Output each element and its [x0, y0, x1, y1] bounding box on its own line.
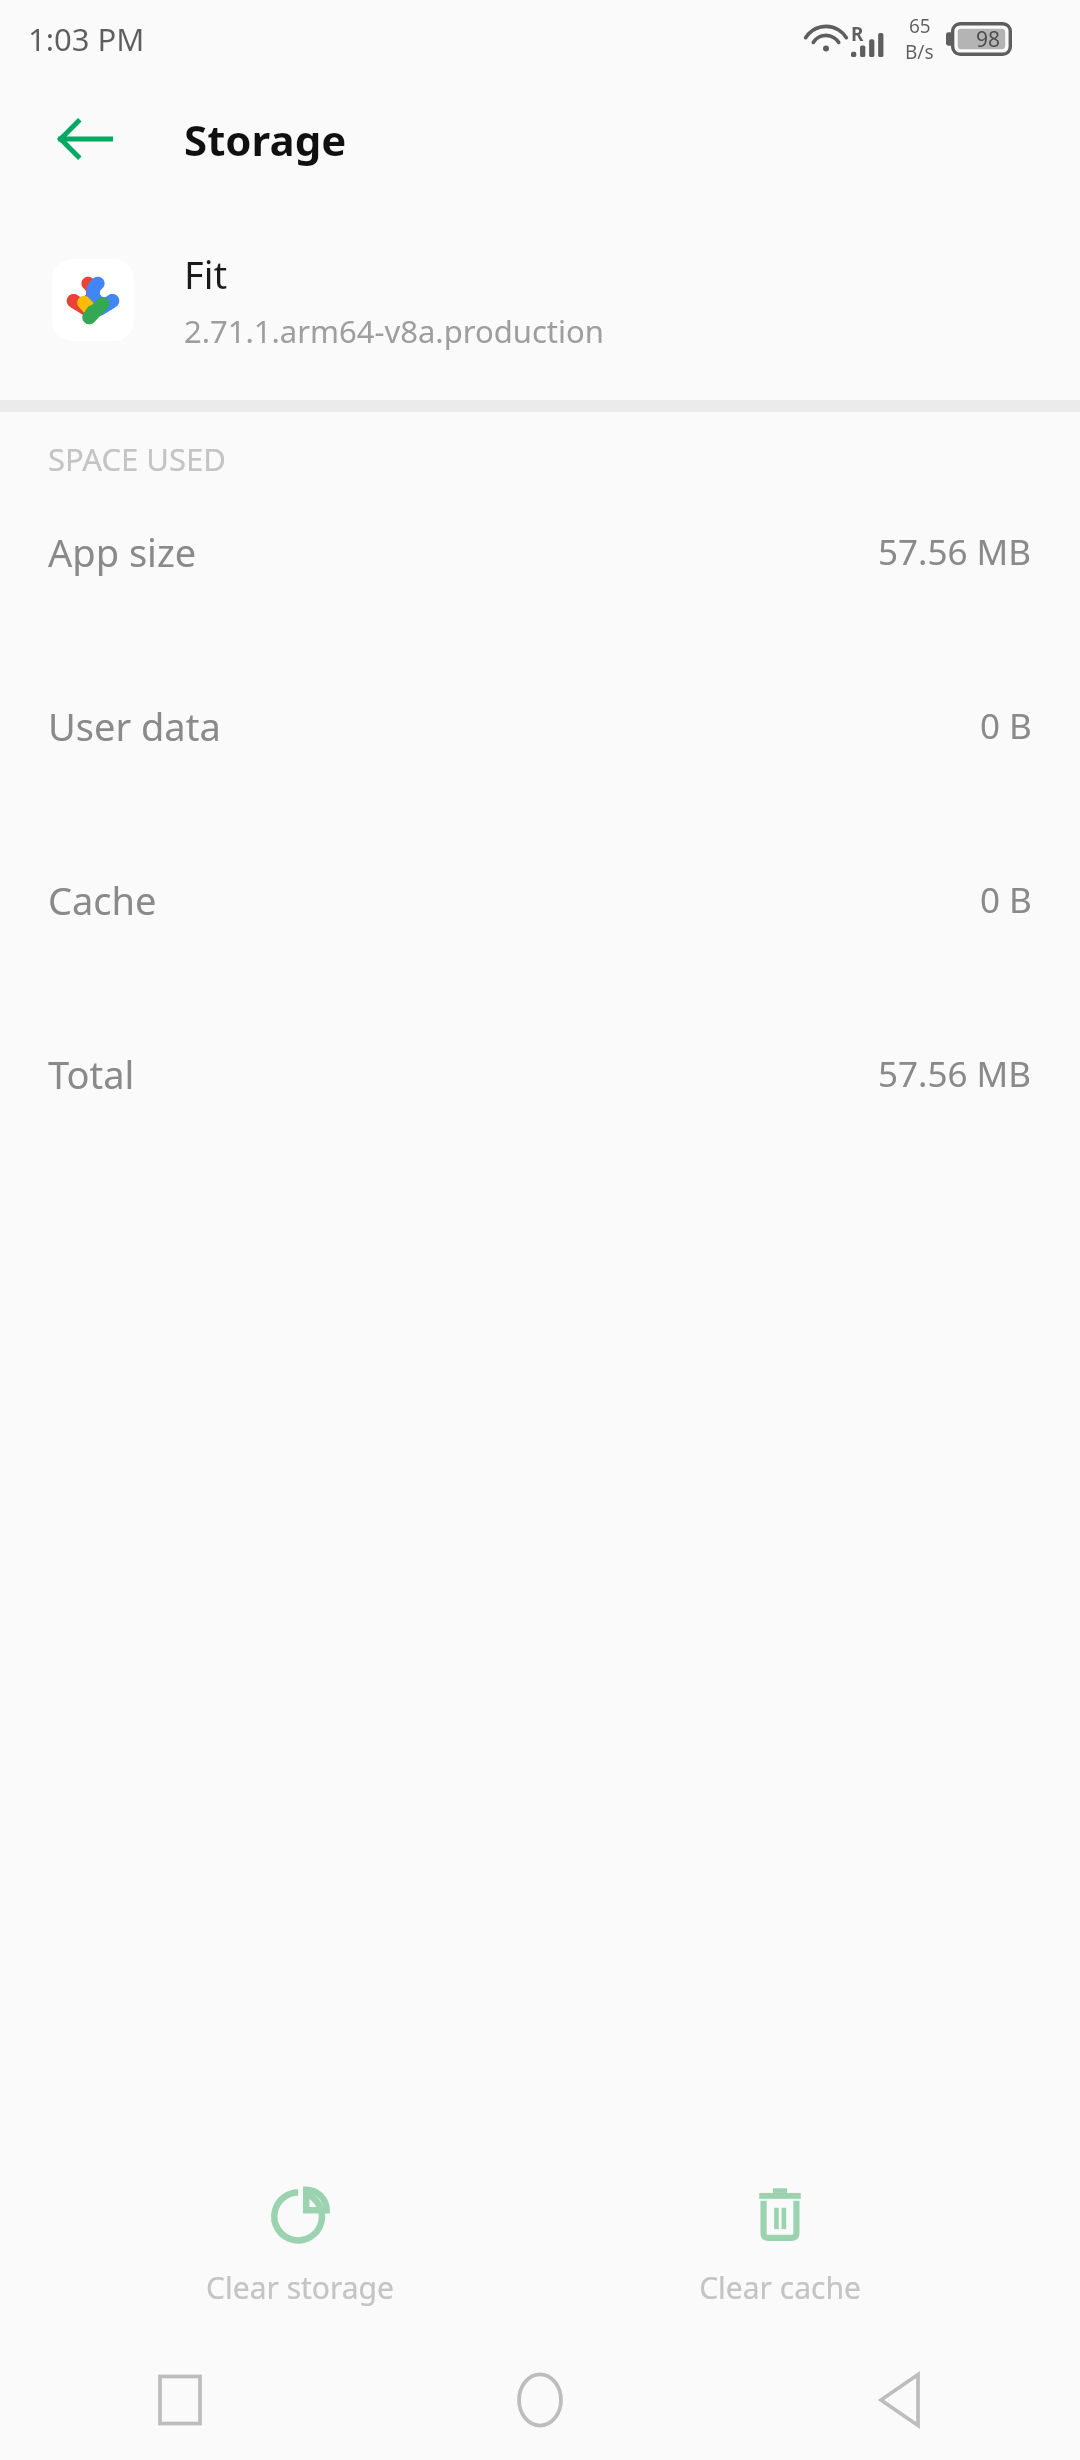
staticText: 98	[976, 25, 1001, 54]
button[interactable]: App size	[0, 510, 1080, 684]
staticText: R	[851, 21, 864, 47]
button[interactable]: Fit	[0, 200, 1080, 400]
staticText: 57.56 MB	[878, 528, 1032, 576]
button[interactable]: Back	[30, 84, 140, 194]
staticText: Clear storage	[206, 2267, 394, 2308]
staticText: User data	[48, 700, 221, 752]
button[interactable]: User data	[0, 684, 1080, 858]
button[interactable]: Back	[720, 2340, 1080, 2460]
staticText: Storage	[184, 111, 347, 168]
button[interactable]: Total	[0, 1032, 1080, 1206]
staticText: Cache	[48, 874, 157, 926]
button[interactable]: Home	[360, 2340, 720, 2460]
button[interactable]: Clear storage	[60, 2169, 540, 2322]
staticText: Clear cache	[699, 2267, 861, 2308]
staticText: B/s	[905, 39, 934, 65]
staticText: 1:03 PM	[28, 18, 145, 60]
staticText: 65	[909, 13, 931, 39]
staticText: 0 B	[980, 876, 1032, 924]
button[interactable]: Cache	[0, 858, 1080, 1032]
button[interactable]: Recents	[0, 2340, 360, 2460]
staticText: SPACE USED	[48, 438, 226, 480]
staticText: Total	[48, 1048, 135, 1100]
button[interactable]: Clear cache	[540, 2169, 1020, 2322]
staticText: App size	[48, 526, 197, 578]
staticText: 0 B	[980, 702, 1032, 750]
staticText: Fit	[184, 248, 228, 300]
staticText: 57.56 MB	[878, 1050, 1032, 1098]
staticText: 2.71.1.arm64-v8a.production	[184, 310, 604, 352]
